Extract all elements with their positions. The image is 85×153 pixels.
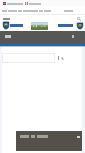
button[interactable] <box>64 9 73 12</box>
button[interactable]: Search <box>77 17 81 21</box>
button[interactable] <box>2 9 30 12</box>
button[interactable] <box>25 2 41 5</box>
button[interactable]: Close <box>16 131 82 151</box>
button[interactable]: Facebook <box>57 56 60 60</box>
button[interactable] <box>2 53 55 63</box>
button[interactable] <box>3 2 23 5</box>
button[interactable] <box>29 9 51 12</box>
button[interactable]: Share <box>61 56 65 60</box>
